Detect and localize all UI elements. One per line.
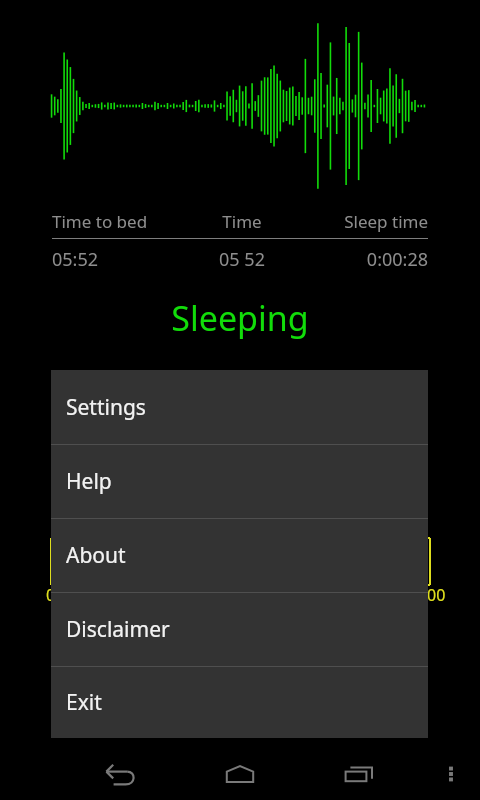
button[interactable]: Home <box>220 754 260 794</box>
staticText: 0 <box>46 584 56 606</box>
staticText: Time <box>187 210 297 233</box>
button[interactable]: Help <box>51 445 428 518</box>
staticText: 05:52 <box>52 247 187 272</box>
staticText: Disclaimer <box>66 615 170 644</box>
staticText: 0:00:28 <box>297 247 428 272</box>
button[interactable]: Settings <box>51 370 428 444</box>
button[interactable]: Back <box>100 754 140 794</box>
staticText: 05 52 <box>187 247 297 272</box>
button[interactable]: Disclaimer <box>51 593 428 666</box>
staticText: Exit <box>66 688 102 717</box>
staticText: Help <box>66 467 112 496</box>
button[interactable]: Exit <box>51 667 428 738</box>
staticText: 00 <box>427 584 446 606</box>
staticText: Sleeping <box>171 295 309 341</box>
button[interactable]: About <box>51 519 428 592</box>
staticText: Sleep time <box>297 210 428 233</box>
staticText: About <box>66 541 126 570</box>
button[interactable]: More options <box>434 757 468 791</box>
button[interactable]: Recent apps <box>340 754 380 794</box>
staticText: Time to bed <box>52 210 187 233</box>
staticText: Settings <box>66 393 146 422</box>
